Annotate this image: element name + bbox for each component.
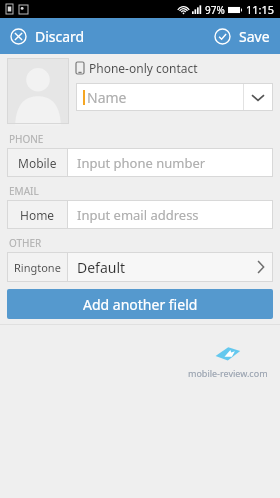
staticText: Add another field (83, 295, 198, 314)
button[interactable]: Expand name fields (243, 83, 273, 111)
staticText: 11:15 (246, 2, 275, 17)
staticText: Default (77, 258, 126, 277)
button[interactable]: Add another field (7, 289, 273, 319)
button[interactable]: Input phone number (68, 148, 273, 177)
button[interactable]: Name (76, 83, 243, 111)
staticText: PHONE (9, 132, 44, 146)
button[interactable]: Home (7, 200, 67, 229)
staticText: Ringtone (14, 260, 61, 275)
staticText: EMAIL (9, 184, 39, 198)
button[interactable]: Contact photo (7, 58, 69, 124)
staticText: Discard (35, 27, 85, 46)
staticText: Phone-only contact (89, 60, 198, 76)
staticText: 97% (205, 3, 225, 17)
button[interactable]: Input email address (68, 200, 273, 229)
staticText: Input phone number (77, 154, 206, 172)
staticText: OTHER (9, 236, 42, 250)
button[interactable]: Ringtone (7, 252, 273, 282)
button[interactable]: Phone-only contact (76, 58, 198, 78)
staticText: Input email address (77, 206, 199, 224)
staticText: mobile-review.com (188, 367, 268, 379)
button[interactable]: Discard (0, 23, 95, 50)
staticText: Save (239, 27, 270, 46)
staticText: Mobile (18, 155, 57, 171)
button[interactable]: Save (204, 23, 280, 50)
staticText: Home (20, 207, 55, 223)
staticText: Name (87, 88, 127, 107)
button[interactable]: Mobile (7, 148, 67, 177)
